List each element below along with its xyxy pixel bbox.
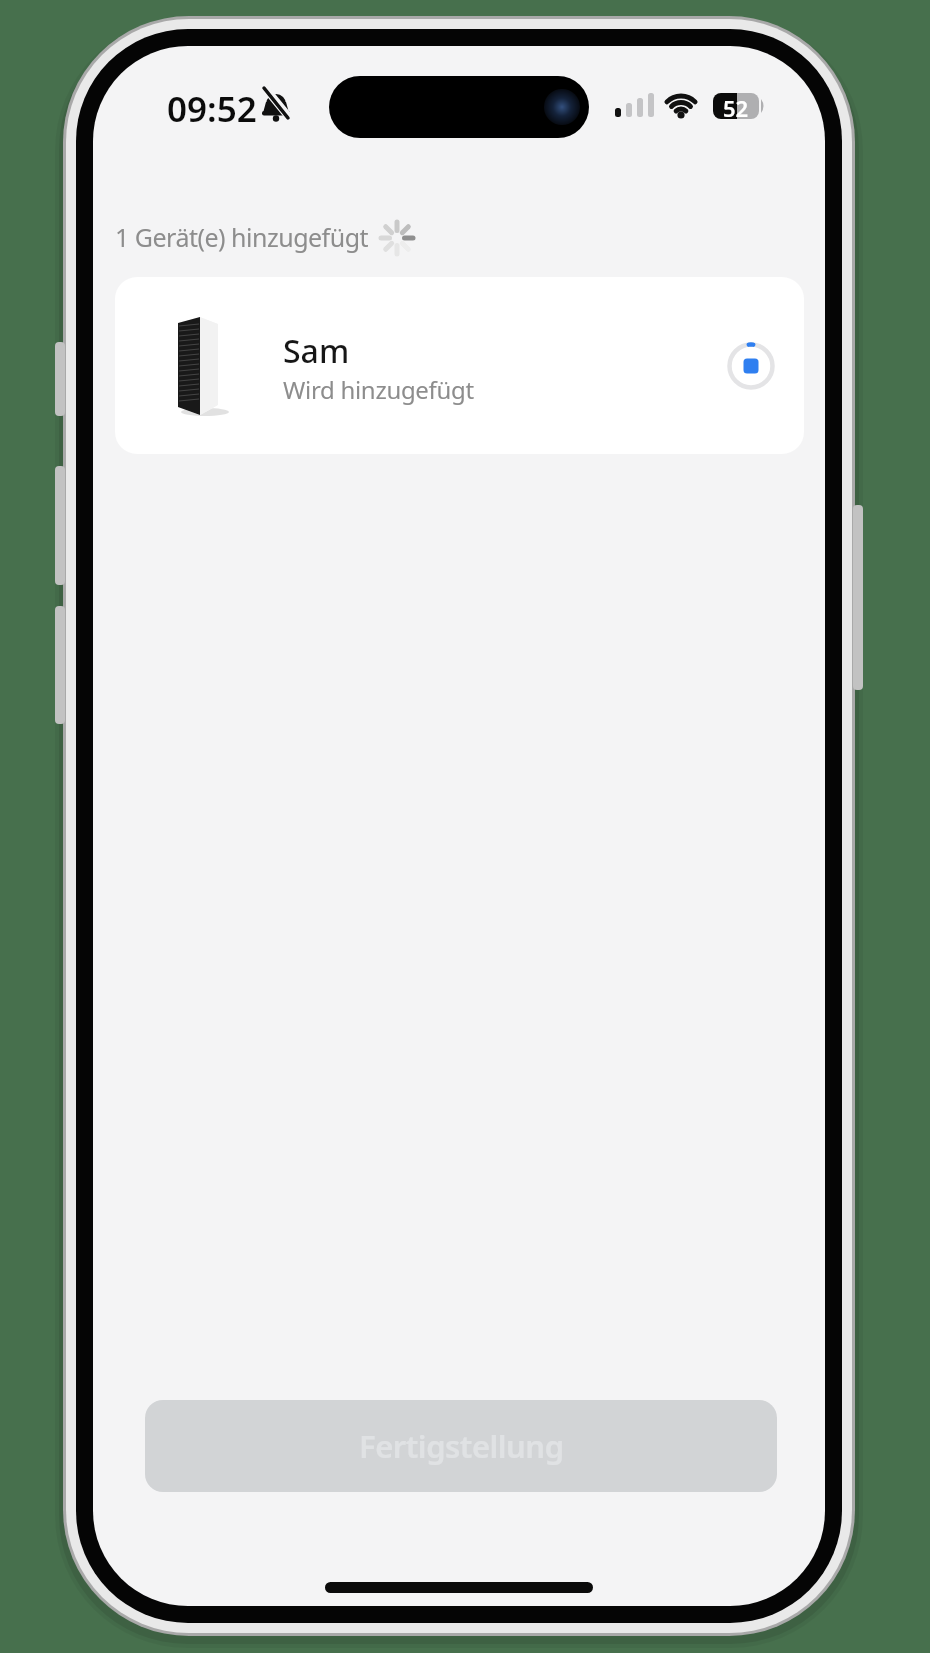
- staticText: Wird hinzugefügt: [283, 373, 474, 406]
- button[interactable]: Sam: [115, 277, 804, 454]
- staticText: Sam: [283, 329, 350, 373]
- button[interactable]: [726, 341, 776, 391]
- button[interactable]: Fertigstellung: [145, 1400, 777, 1492]
- staticText: Fertigstellung: [359, 1425, 564, 1467]
- staticText: 1 Gerät(e) hinzugefügt: [115, 220, 369, 254]
- staticText: 09:52: [167, 85, 257, 133]
- staticText: 52: [723, 93, 749, 119]
